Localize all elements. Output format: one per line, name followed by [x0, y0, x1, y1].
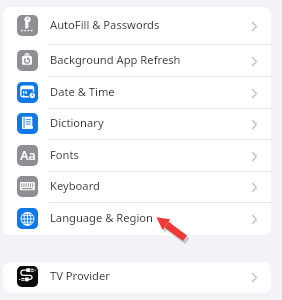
staticText: Background App Refresh [50, 52, 181, 67]
staticText: Aa [20, 147, 36, 164]
button[interactable]: Background App Refresh [3, 45, 271, 77]
staticText: Keyboard [50, 178, 100, 193]
button[interactable]: Dictionary [3, 109, 271, 140]
staticText: Date & Time [50, 84, 115, 99]
button[interactable]: AutoFill & Passwords [3, 7, 271, 45]
button[interactable]: Date & Time [3, 77, 271, 109]
staticText: AutoFill & Passwords [50, 17, 160, 32]
staticText: Fonts [50, 147, 79, 162]
button[interactable]: TV Provider [3, 262, 271, 293]
staticText: Dictionary [50, 115, 104, 130]
button[interactable]: Aa [3, 140, 271, 172]
staticText: TV Provider [50, 268, 110, 283]
button[interactable]: Language & Region [3, 203, 271, 235]
staticText: Language & Region [50, 210, 154, 225]
button[interactable]: Keyboard [3, 172, 271, 203]
